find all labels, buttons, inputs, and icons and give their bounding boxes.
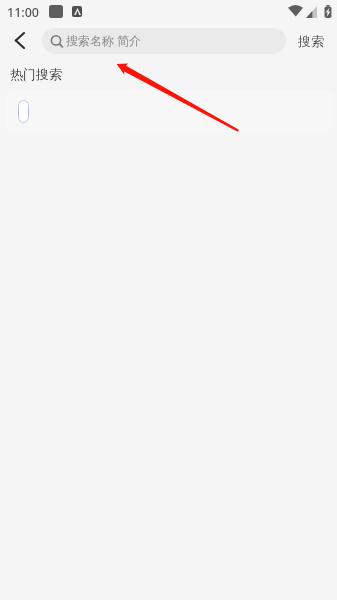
button[interactable]: Back <box>4 25 34 55</box>
staticText: 热门搜索 <box>10 66 62 82</box>
button[interactable]: 搜索名称 简介 <box>42 28 286 54</box>
staticText: 搜索 <box>298 33 324 49</box>
staticText: 11:00 <box>7 4 40 21</box>
staticText: 搜索名称 简介 <box>66 32 142 48</box>
button[interactable]: Hot search keyword <box>18 100 29 123</box>
button[interactable]: 搜索 <box>290 26 332 56</box>
